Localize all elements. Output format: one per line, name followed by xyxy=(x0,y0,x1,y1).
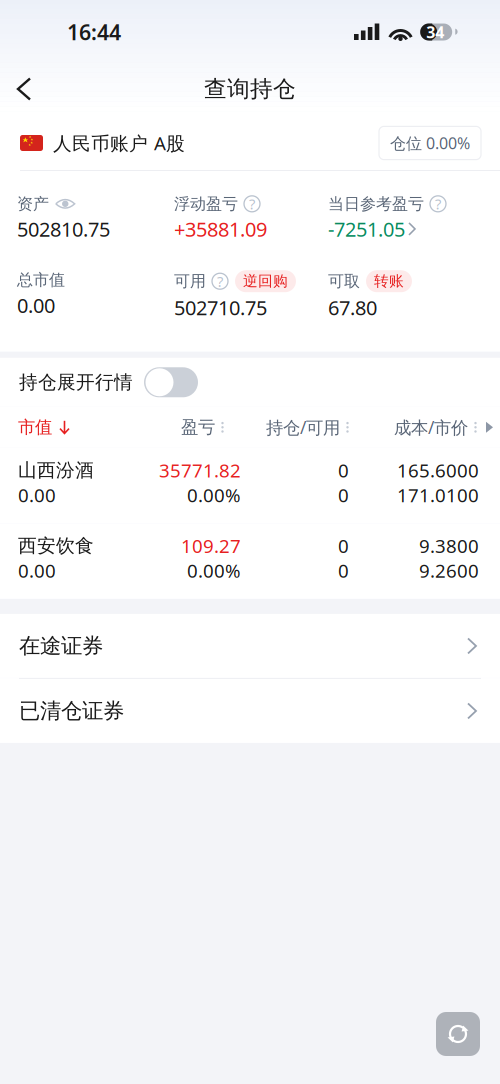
staticText: 67.80 xyxy=(328,294,377,321)
staticText: 持仓/可用 xyxy=(266,416,340,439)
staticText: 人民币账户 A股 xyxy=(53,131,185,155)
button[interactable]: 成本/市价 xyxy=(394,416,477,439)
staticText: ? xyxy=(217,271,223,291)
staticText: 总市值 xyxy=(17,270,65,290)
button[interactable]: 盈亏 xyxy=(181,417,224,438)
staticText: 资产 xyxy=(17,194,49,214)
staticText: 9.3800 xyxy=(419,533,479,558)
staticText: 0.00% xyxy=(187,483,241,507)
staticText: 0.00 xyxy=(18,483,56,507)
button[interactable]: 山西汾酒 xyxy=(0,448,500,523)
button[interactable]: 西安饮食 xyxy=(0,523,500,599)
staticText: 持仓展开行情 xyxy=(19,371,133,394)
staticText: 盈亏 xyxy=(181,417,215,438)
button[interactable]: 在途证券 xyxy=(0,614,500,678)
staticText: 9.2600 xyxy=(419,558,479,583)
staticText: 在途证券 xyxy=(19,633,103,659)
staticText: 0 xyxy=(338,558,349,583)
staticText: 0 xyxy=(338,483,349,507)
button[interactable]: 持仓展开行情 xyxy=(133,367,198,397)
staticText: 109.27 xyxy=(181,533,241,558)
button[interactable]: 市值 xyxy=(18,417,70,438)
staticText: 34 xyxy=(426,21,444,43)
staticText: +35881.09 xyxy=(174,216,267,242)
staticText: 西安饮食 xyxy=(18,534,94,557)
staticText: 502810.75 xyxy=(17,216,110,242)
staticText: 转账 xyxy=(374,272,404,290)
staticText: 0 xyxy=(338,458,349,483)
staticText: 171.0100 xyxy=(397,483,479,507)
staticText: 山西汾酒 xyxy=(18,459,94,482)
staticText: 查询持仓 xyxy=(204,75,296,103)
staticText: 市值 xyxy=(18,417,52,438)
staticText: 0.00 xyxy=(17,292,55,318)
staticText: 成本/市价 xyxy=(394,416,468,439)
staticText: 可取 xyxy=(328,271,360,291)
staticText: 浮动盈亏 xyxy=(174,194,238,214)
staticText: 仓位 0.00% xyxy=(390,132,470,154)
button[interactable]: 持仓/可用 xyxy=(266,416,349,439)
staticText: 0.00% xyxy=(187,558,241,583)
button[interactable]: 已清仓证券 xyxy=(0,679,500,743)
staticText: ? xyxy=(435,194,441,214)
staticText: 16:44 xyxy=(67,18,121,46)
staticText: 502710.75 xyxy=(174,294,267,321)
staticText: 已清仓证券 xyxy=(19,698,124,724)
button[interactable]: 刷新 xyxy=(436,1012,480,1056)
staticText: 0 xyxy=(338,533,349,558)
staticText: 0.00 xyxy=(18,558,56,583)
staticText: -7251.05 xyxy=(328,216,405,242)
staticText: ? xyxy=(249,194,255,214)
staticText: 可用 xyxy=(174,271,206,291)
button[interactable]: 返回 xyxy=(0,60,48,114)
staticText: 165.6000 xyxy=(397,458,479,483)
staticText: 逆回购 xyxy=(243,272,288,290)
staticText: 35771.82 xyxy=(159,458,241,483)
staticText: 当日参考盈亏 xyxy=(328,194,424,214)
